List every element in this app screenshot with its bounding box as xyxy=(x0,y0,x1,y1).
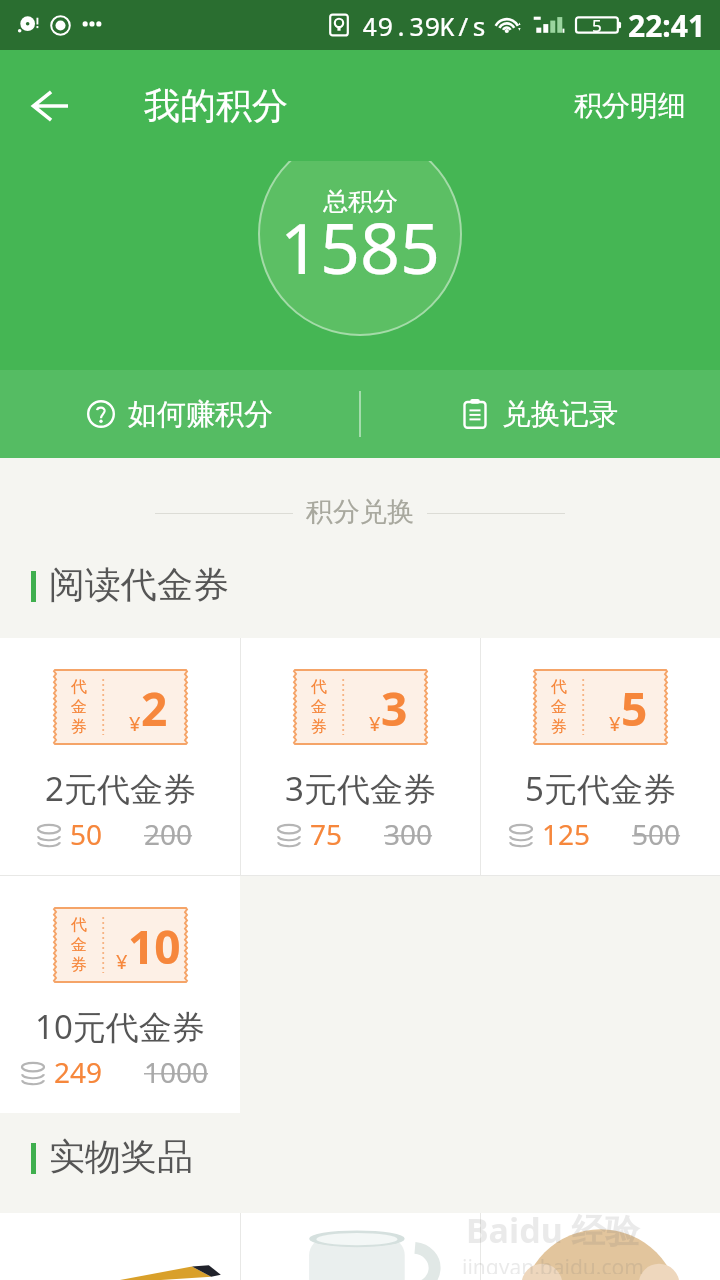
staticText: 代 xyxy=(71,677,87,697)
staticText: 75 xyxy=(310,815,343,853)
button[interactable]: Back xyxy=(0,50,99,161)
button[interactable]: 积分明细 xyxy=(540,68,720,143)
staticText: 500 xyxy=(632,815,681,853)
staticText: 总积分 xyxy=(323,186,398,217)
button[interactable]: Baidu 经验 xyxy=(481,1213,720,1280)
staticText: 券 xyxy=(71,955,87,975)
staticText: 代 xyxy=(71,915,87,935)
staticText: 2元代金券 xyxy=(45,766,196,811)
staticText: 券 xyxy=(71,717,87,737)
button[interactable] xyxy=(0,1213,240,1280)
staticText: 125 xyxy=(542,815,591,853)
button[interactable]: 代 xyxy=(0,876,240,1113)
staticText: 10 xyxy=(128,915,181,978)
button[interactable]: 如何赚积分 xyxy=(0,370,360,458)
staticText: 金 xyxy=(71,697,87,717)
button[interactable]: 兑换记录 xyxy=(360,370,720,458)
staticText: 5元代金券 xyxy=(525,766,676,811)
staticText: 金 xyxy=(311,697,327,717)
staticText: 如何赚积分 xyxy=(128,396,273,433)
staticText: 券 xyxy=(551,717,567,737)
staticText: 1000 xyxy=(144,1053,209,1091)
staticText: 49.39K/s xyxy=(362,8,487,43)
staticText: 3 xyxy=(381,677,408,740)
staticText: 2 xyxy=(141,677,168,740)
staticText: jingyan.baidu.com xyxy=(462,1253,644,1274)
button[interactable]: 代 xyxy=(241,638,480,875)
staticText: 3元代金券 xyxy=(285,766,436,811)
staticText: 金 xyxy=(551,697,567,717)
staticText: 阅读代金券 xyxy=(49,562,229,607)
staticText: 249 xyxy=(54,1053,103,1091)
staticText: Baidu 经验 xyxy=(466,1207,640,1253)
staticText: 5 xyxy=(592,14,602,37)
staticText: 金 xyxy=(71,935,87,955)
staticText: 积分明细 xyxy=(574,88,686,123)
staticText: 5 xyxy=(621,677,648,740)
staticText: 我的积分 xyxy=(144,83,288,128)
staticText: ¥ xyxy=(116,948,128,975)
staticText: 积分兑换 xyxy=(306,495,414,529)
staticText: ¥ xyxy=(609,710,621,737)
staticText: 兑换记录 xyxy=(502,396,618,433)
button[interactable]: 代 xyxy=(0,638,240,875)
staticText: 200 xyxy=(144,815,193,853)
staticText: ¥ xyxy=(129,710,141,737)
staticText: 50 xyxy=(70,815,103,853)
staticText: 代 xyxy=(311,677,327,697)
staticText: ¥ xyxy=(369,710,381,737)
staticText: 1585 xyxy=(280,199,441,294)
button[interactable] xyxy=(241,1213,480,1280)
staticText: 代 xyxy=(551,677,567,697)
staticText: 22:41 xyxy=(628,5,706,46)
staticText: 300 xyxy=(384,815,433,853)
staticText: 券 xyxy=(311,717,327,737)
staticText: 实物奖品 xyxy=(49,1134,193,1179)
staticText: 10元代金券 xyxy=(35,1004,205,1049)
button[interactable]: 代 xyxy=(481,638,720,875)
